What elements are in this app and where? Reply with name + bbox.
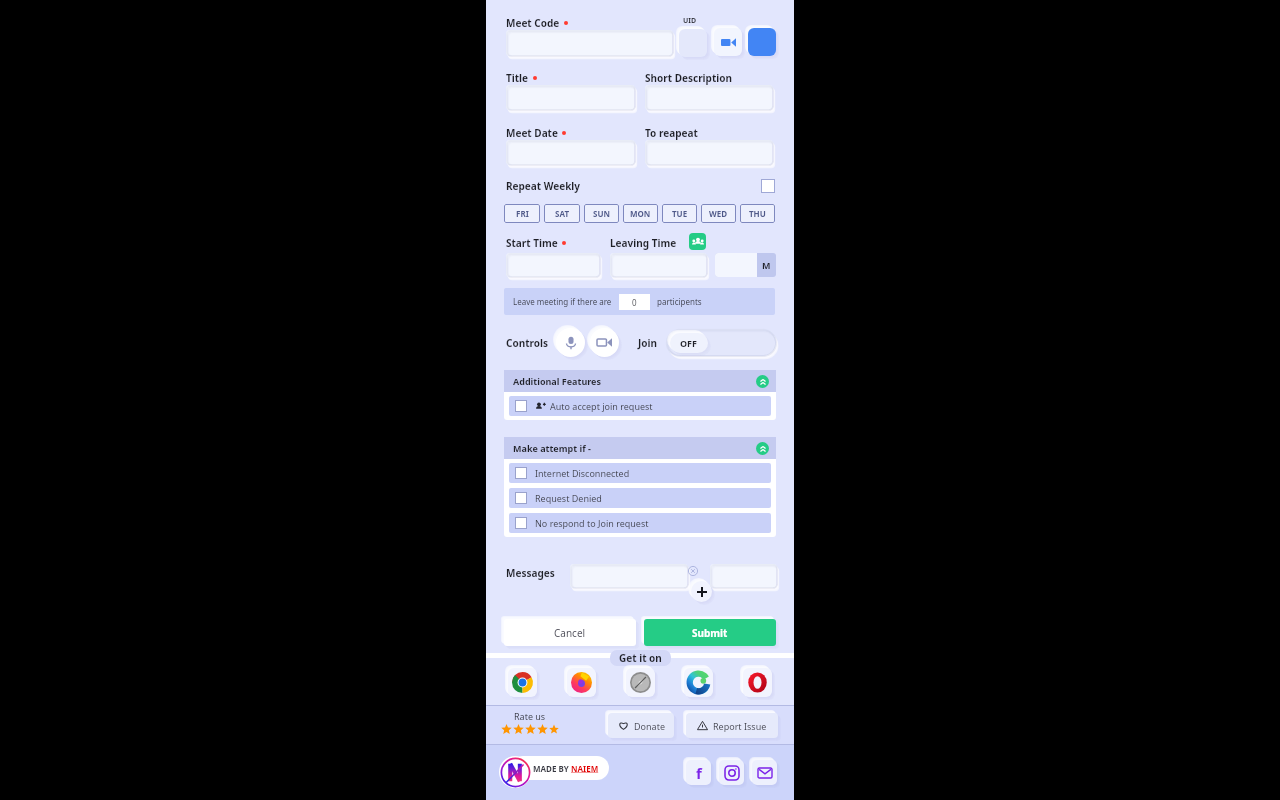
button[interactable]: Leaving Time	[610, 253, 707, 277]
staticText: Leaving Time	[610, 236, 677, 250]
button[interactable]: WED	[701, 204, 736, 223]
button[interactable]: FRI	[504, 204, 540, 223]
staticText: M	[762, 259, 771, 271]
staticText: Get it on	[619, 651, 662, 665]
staticText: 0	[632, 297, 637, 308]
staticText: NAIEM	[571, 763, 599, 774]
staticText: Report Issue	[713, 720, 767, 732]
button[interactable]: Firefox	[567, 668, 596, 697]
button[interactable]: No respond to Join request	[515, 513, 765, 533]
button[interactable]: Message time	[710, 564, 777, 588]
button[interactable]: Naiem logo	[499, 756, 531, 788]
staticText: Leave meeting if there are	[513, 296, 612, 307]
staticText: Meet Code	[506, 16, 560, 30]
staticText: SUN	[593, 208, 610, 219]
button[interactable]: Meet Date	[506, 140, 635, 165]
button[interactable]: Microphone	[556, 328, 585, 357]
staticText: Make attempt if -	[513, 442, 591, 454]
button[interactable]: Report Issue	[686, 713, 778, 738]
button[interactable]: Additional Features	[513, 370, 769, 392]
button[interactable]: Add message	[691, 581, 712, 602]
staticText: UID	[683, 16, 697, 26]
button[interactable]: Facebook	[686, 760, 711, 785]
button[interactable]: Camera	[590, 328, 619, 357]
staticText: THU	[749, 208, 766, 219]
button[interactable]: Safari	[626, 668, 655, 697]
staticText: Request Denied	[535, 492, 602, 504]
button[interactable]: MON	[623, 204, 658, 223]
button[interactable]: Cancel	[504, 619, 636, 646]
staticText: Internet Disconnected	[535, 467, 630, 479]
staticText: Meet Date	[506, 126, 558, 140]
button[interactable]: Make attempt if -	[513, 437, 769, 459]
staticText: f	[696, 763, 702, 783]
button[interactable]: Minutes unit	[757, 253, 776, 277]
staticText: Join	[638, 336, 658, 350]
staticText: No respond to Join request	[535, 517, 649, 529]
button[interactable]: TUE	[662, 204, 697, 223]
staticText: FRI	[516, 208, 529, 219]
staticText: SAT	[555, 208, 569, 219]
button[interactable]: Opera	[743, 668, 772, 697]
button[interactable]: Internet Disconnected	[515, 463, 765, 483]
button[interactable]: MADE BY	[533, 756, 599, 780]
staticText: Start Time	[506, 236, 558, 250]
button[interactable]: Title	[506, 85, 635, 110]
button[interactable]: Collapse	[756, 375, 769, 388]
staticText: MON	[630, 208, 651, 219]
staticText: Title	[506, 71, 529, 85]
button[interactable]: Submit	[644, 619, 776, 646]
button[interactable]: Chrome	[508, 668, 537, 697]
button[interactable]: Message text	[570, 564, 688, 588]
button[interactable]: Clear message	[686, 564, 700, 578]
button[interactable]: Repeat Weekly	[506, 178, 775, 194]
button[interactable]: Start meeting	[748, 28, 776, 56]
button[interactable]: Email	[752, 760, 777, 785]
button[interactable]: Auto accept join request	[515, 396, 765, 416]
button[interactable]: Start Time	[506, 253, 600, 277]
button[interactable]: SUN	[584, 204, 619, 223]
button[interactable]: Join toggle	[666, 329, 776, 356]
staticText: Auto accept join request	[550, 400, 653, 412]
button[interactable]: To reapeat	[645, 140, 773, 165]
button[interactable]: Collapse	[756, 442, 769, 455]
button[interactable]: Meet Code	[506, 30, 673, 56]
button[interactable]: Edge	[684, 668, 713, 697]
staticText: Donate	[634, 720, 665, 732]
staticText: Controls	[506, 336, 549, 350]
staticText: TUE	[672, 208, 688, 219]
staticText: Rate us	[514, 710, 546, 722]
button[interactable]: Instagram	[719, 760, 744, 785]
staticText: Repeat Weekly	[506, 179, 581, 193]
button[interactable]: Request Denied	[515, 488, 765, 508]
staticText: WED	[709, 208, 728, 219]
staticText: OFF	[680, 337, 698, 349]
button[interactable]: Participants	[689, 233, 706, 250]
button[interactable]: Short Description	[645, 85, 773, 110]
button[interactable]: Video call	[714, 28, 742, 56]
staticText: Cancel	[554, 626, 586, 640]
staticText: Additional Features	[513, 375, 601, 387]
staticText: Short Description	[645, 71, 732, 85]
staticText: To reapeat	[645, 126, 698, 140]
staticText: Messages	[506, 566, 555, 580]
button[interactable]: SAT	[544, 204, 580, 223]
button[interactable]: Donate	[608, 713, 674, 738]
button[interactable]: Rate us	[501, 710, 559, 735]
button[interactable]: Participant count	[619, 294, 650, 310]
staticText: Submit	[692, 626, 728, 640]
staticText: participents	[657, 296, 702, 307]
button[interactable]: THU	[740, 204, 775, 223]
staticText: MADE BY	[533, 763, 571, 774]
